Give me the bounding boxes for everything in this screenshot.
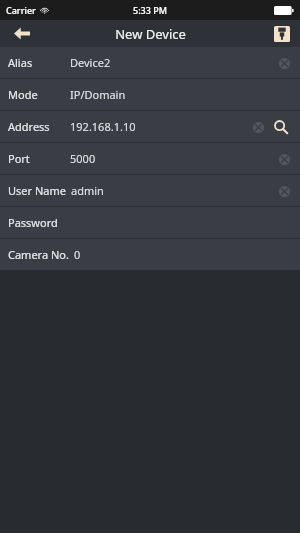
staticText: Mode: [8, 87, 38, 102]
staticText: New Device: [115, 25, 186, 43]
button[interactable]: User Name: [0, 175, 300, 206]
button[interactable]: Port: [0, 143, 300, 174]
button[interactable]: Save: [264, 20, 300, 47]
button[interactable]: Mode: [0, 79, 300, 110]
button[interactable]: Password: [0, 207, 300, 238]
button[interactable]: Clear Alias: [276, 55, 292, 71]
staticText: Address: [8, 119, 50, 134]
staticText: Password: [8, 215, 58, 230]
button[interactable]: Clear Port: [276, 151, 292, 167]
staticText: 5000: [70, 151, 96, 166]
staticText: 5:33 PM: [133, 4, 167, 16]
staticText: User Name: [8, 183, 66, 198]
button[interactable]: Clear Address: [250, 119, 266, 135]
button[interactable]: Alias: [0, 47, 300, 78]
staticText: Device2: [70, 55, 111, 70]
staticText: Camera No.: [8, 247, 69, 262]
staticText: 192.168.1.10: [70, 119, 136, 134]
button[interactable]: Camera No.: [0, 239, 300, 270]
button[interactable]: Back: [0, 20, 44, 47]
button[interactable]: Search: [270, 116, 292, 138]
button[interactable]: Clear User Name: [276, 183, 292, 199]
staticText: Alias: [8, 55, 33, 70]
staticText: admin: [71, 183, 104, 198]
staticText: Carrier: [6, 4, 36, 16]
staticText: 0: [74, 247, 81, 262]
button[interactable]: Address: [0, 111, 300, 142]
staticText: IP/Domain: [70, 87, 126, 102]
staticText: Port: [8, 151, 30, 166]
